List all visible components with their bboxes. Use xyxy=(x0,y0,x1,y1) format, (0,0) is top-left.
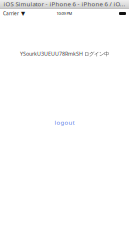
staticText: Carrier xyxy=(3,10,19,17)
staticText: logout xyxy=(54,118,74,126)
staticText: YSourkU3UEUU78RmkSH ログイン中 xyxy=(20,50,109,57)
staticText: iOS Simulator - iPhone 6 - iPhone 6 / iO… xyxy=(3,0,125,8)
button[interactable]: logout xyxy=(54,118,74,126)
staticText: ▼ xyxy=(21,10,25,17)
staticText: 10:09 PM xyxy=(56,11,72,16)
